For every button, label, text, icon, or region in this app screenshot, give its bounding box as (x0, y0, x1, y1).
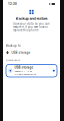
staticText: 12:30 (8, 2, 17, 6)
staticText: Supports 1 - 2 TB (14, 70, 31, 72)
staticText: Backup device (6, 58, 20, 61)
staticText: Back up to (6, 44, 21, 47)
staticText: Backup and restore (15, 16, 47, 21)
staticText: USB storage (14, 66, 33, 69)
staticText: No data backed up yet (14, 73, 36, 76)
button[interactable]: USB storage (6, 64, 57, 77)
staticText: USB storage (11, 51, 30, 54)
staticText: Save your data so you can restore it if … (13, 22, 50, 32)
button[interactable]: USB storage (6, 51, 57, 54)
